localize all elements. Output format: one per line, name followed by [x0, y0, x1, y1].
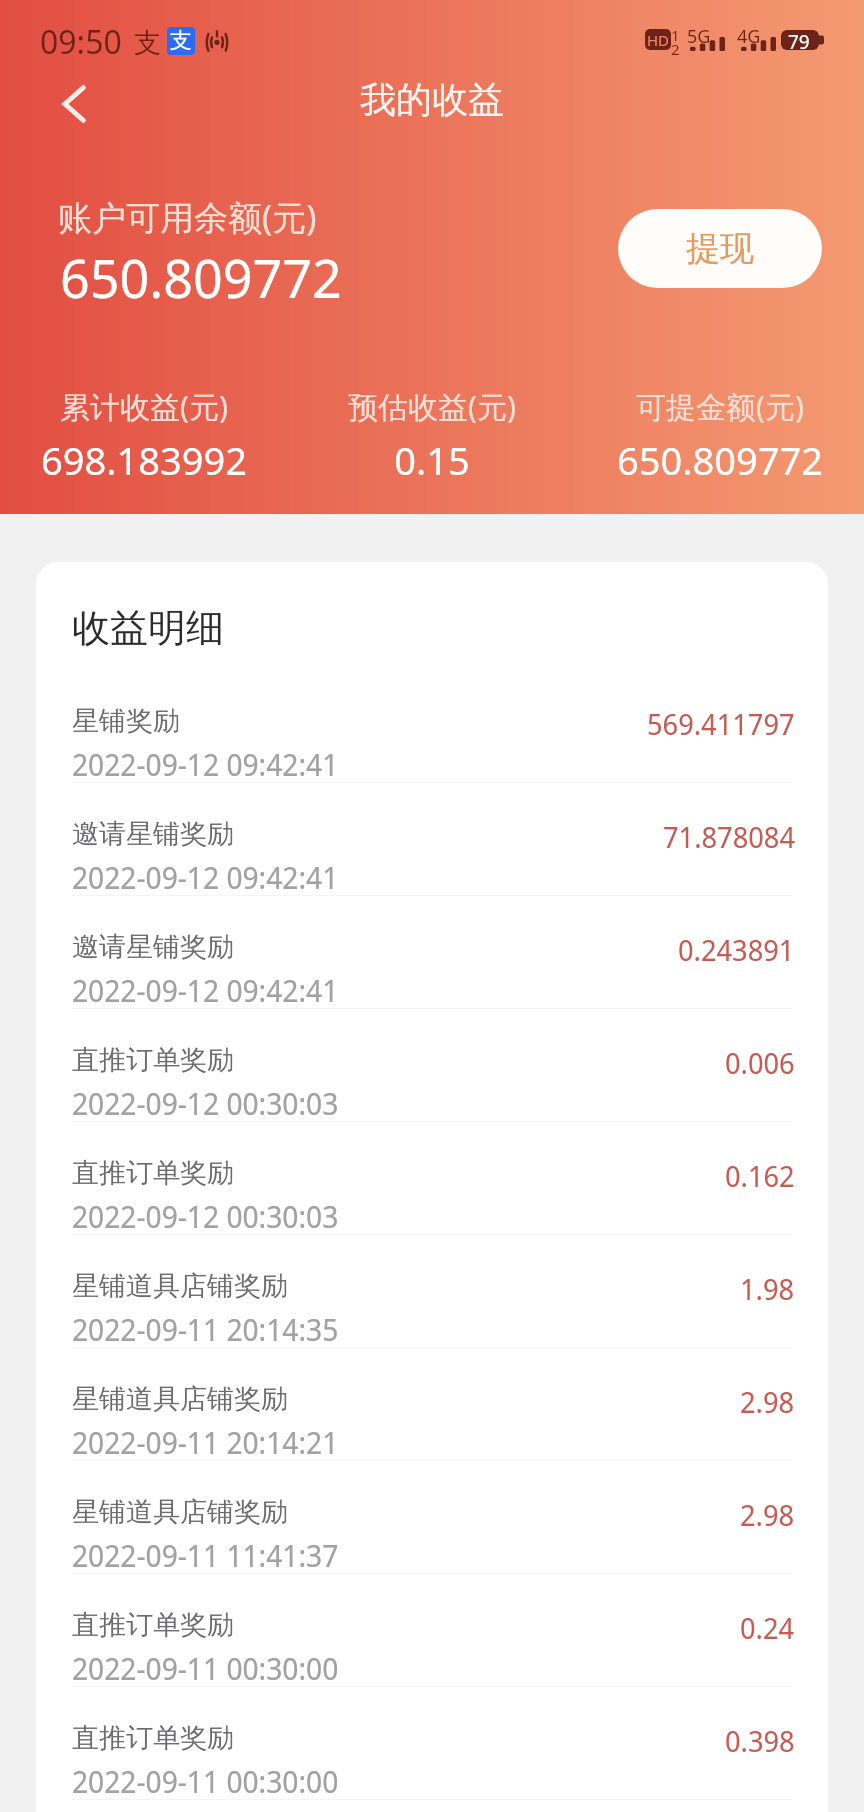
- staticText: 2022-09-11 11:41:37: [72, 1535, 339, 1576]
- staticText: 0.24: [740, 1608, 795, 1647]
- staticText: 我的收益: [360, 77, 504, 122]
- staticText: 支: [134, 26, 161, 60]
- staticText: 2.98: [740, 1382, 795, 1421]
- staticText: 直推订单奖励: [72, 1608, 234, 1642]
- staticText: 2022-09-11 00:30:00: [72, 1648, 339, 1689]
- button[interactable]: 星铺奖励: [36, 670, 828, 783]
- staticText: 2022-09-12 00:30:03: [72, 1083, 339, 1124]
- staticText: 2022-09-11 00:30:00: [72, 1761, 339, 1802]
- staticText: 2022-09-11 20:14:35: [72, 1309, 339, 1350]
- button[interactable]: 星铺道具店铺奖励: [36, 1461, 828, 1574]
- staticText: 累计收益(元): [60, 386, 228, 427]
- staticText: 收益明细: [72, 604, 224, 652]
- staticText: 预估收益(元): [348, 386, 516, 427]
- staticText: 直推订单奖励: [72, 1156, 234, 1190]
- button[interactable]: 预估收益(元): [288, 386, 576, 486]
- staticText: 1: [671, 25, 680, 45]
- staticText: 0.243891: [678, 930, 795, 969]
- staticText: 提现: [686, 227, 754, 270]
- staticText: 2022-09-12 00:30:03: [72, 1196, 339, 1237]
- staticText: 2022-09-11 20:14:21: [72, 1422, 339, 1463]
- staticText: 698.183992: [41, 434, 247, 486]
- staticText: 650.809772: [617, 434, 823, 486]
- staticText: 支: [170, 27, 192, 55]
- button[interactable]: 直推订单奖励: [36, 1574, 828, 1687]
- button[interactable]: Back: [36, 66, 112, 142]
- staticText: 0.006: [725, 1043, 795, 1082]
- staticText: 0.398: [725, 1721, 795, 1760]
- staticText: 650.809772: [60, 242, 342, 313]
- staticText: 79: [788, 29, 810, 55]
- staticText: 2: [671, 39, 680, 59]
- staticText: 星铺道具店铺奖励: [72, 1269, 288, 1303]
- staticText: 0.15: [394, 434, 470, 486]
- staticText: 09:50: [40, 20, 122, 64]
- staticText: 2.98: [740, 1495, 795, 1534]
- button[interactable]: 邀请星铺奖励: [36, 896, 828, 1009]
- staticText: 0.162: [725, 1156, 795, 1195]
- button[interactable]: 星铺道具店铺奖励: [36, 1235, 828, 1348]
- staticText: 星铺道具店铺奖励: [72, 1495, 288, 1529]
- staticText: 2022-09-12 09:42:41: [72, 970, 339, 1011]
- staticText: 邀请星铺奖励: [72, 930, 234, 964]
- staticText: 星铺奖励: [72, 704, 180, 738]
- button[interactable]: 星铺道具店铺奖励: [36, 1348, 828, 1461]
- button[interactable]: 累计收益(元): [0, 386, 288, 486]
- staticText: 账户可用余额(元): [58, 194, 317, 240]
- staticText: 邀请星铺奖励: [72, 817, 234, 851]
- staticText: 569.411797: [647, 704, 795, 743]
- button[interactable]: 直推订单奖励: [36, 1009, 828, 1122]
- button[interactable]: 邀请星铺奖励: [36, 783, 828, 896]
- staticText: 4G: [737, 24, 761, 49]
- button[interactable]: 直推订单奖励: [36, 1122, 828, 1235]
- staticText: HD: [647, 30, 670, 50]
- button[interactable]: 可提金额(元): [576, 386, 864, 486]
- staticText: 1.98: [740, 1269, 795, 1308]
- button[interactable]: 提现: [618, 209, 822, 288]
- staticText: 星铺道具店铺奖励: [72, 1382, 288, 1416]
- staticText: 直推订单奖励: [72, 1721, 234, 1755]
- button[interactable]: 直推订单奖励: [36, 1687, 828, 1800]
- staticText: 可提金额(元): [636, 386, 804, 427]
- staticText: 71.878084: [663, 817, 795, 856]
- staticText: 2022-09-12 09:42:41: [72, 744, 339, 785]
- staticText: 2022-09-12 09:42:41: [72, 857, 339, 898]
- staticText: 5G: [687, 24, 711, 49]
- staticText: 直推订单奖励: [72, 1043, 234, 1077]
